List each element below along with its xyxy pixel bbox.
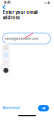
staticText: name@example.com — [4, 36, 38, 40]
button[interactable]: Colour — [3, 68, 8, 73]
staticText: Need help? — [2, 106, 20, 110]
button[interactable]: Need help? — [0, 105, 22, 111]
button[interactable]: Back — [0, 3, 8, 10]
staticText: 9:41 — [4, 0, 10, 5]
button[interactable]: Pen tool — [3, 53, 8, 58]
button[interactable]: Shape tool — [3, 45, 8, 50]
staticText: ▪▪▮ — [44, 1, 50, 4]
staticText: Enter your email address — [2, 10, 37, 20]
button[interactable]: Continue — [38, 105, 49, 111]
